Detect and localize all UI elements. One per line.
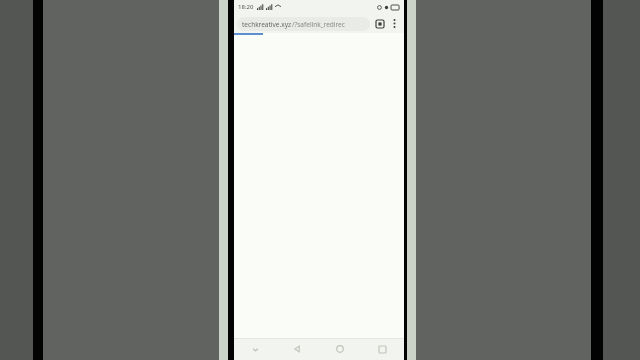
button[interactable]: Recent apps [361, 338, 404, 360]
button[interactable]: Back [276, 338, 318, 360]
button[interactable]: Hide keyboard [234, 338, 276, 360]
staticText: /?safelink_redirec [292, 20, 345, 29]
button[interactable]: techkreative.xyz [237, 17, 370, 31]
staticText: 18:20 [238, 3, 254, 11]
button[interactable]: Home [318, 338, 361, 360]
button[interactable]: Tabs [373, 17, 386, 30]
staticText: techkreative.xyz [242, 20, 292, 29]
button[interactable]: More options [388, 17, 401, 30]
